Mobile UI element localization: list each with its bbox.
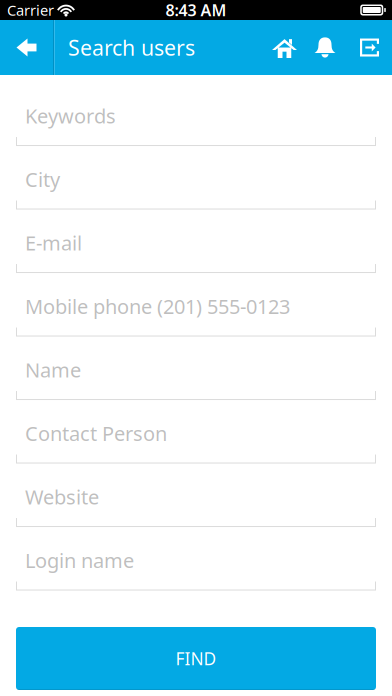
button[interactable]: Log out [355,20,384,75]
button[interactable]: Home [266,20,303,75]
staticText: E-mail [25,229,82,256]
button[interactable]: Website [16,463,376,527]
staticText: Website [25,483,99,510]
button[interactable]: City [16,146,376,209]
button[interactable]: Contact Person [16,400,376,463]
button[interactable]: Name [16,336,376,400]
staticText: Login name [25,547,134,574]
staticText: Keywords [25,102,116,129]
staticText: 8:43 AM [165,0,226,21]
button[interactable]: E-mail [16,209,376,273]
staticText: Search users [68,33,195,62]
button[interactable]: Login name [16,527,376,590]
staticText: Contact Person [25,420,167,447]
staticText: Mobile phone (201) 555-0123 [25,293,290,320]
button[interactable]: Keywords [16,82,376,146]
staticText: City [25,166,60,193]
staticText: Name [25,356,81,383]
staticText: Carrier [7,0,54,20]
button[interactable]: FIND [16,627,376,690]
staticText: FIND [175,647,216,670]
button[interactable]: Mobile phone (201) 555-0123 [16,273,376,336]
button[interactable]: Notifications [311,20,339,75]
button[interactable]: Back [0,20,53,75]
